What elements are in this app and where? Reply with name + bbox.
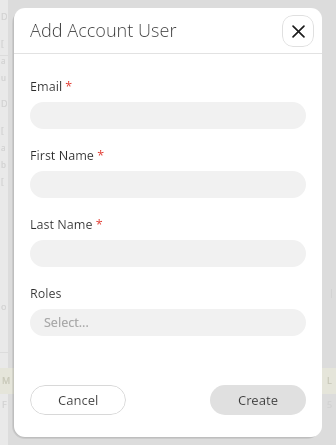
- staticText: a: [1, 142, 6, 153]
- staticText: u: [1, 72, 6, 83]
- staticText: L: [327, 374, 332, 386]
- staticText: First Name *: [30, 147, 105, 164]
- staticText: Add Account User: [30, 18, 177, 43]
- staticText: M: [2, 374, 11, 386]
- button[interactable]: Create: [210, 385, 306, 415]
- staticText: o: [1, 300, 7, 312]
- staticText: a: [1, 55, 6, 66]
- staticText: b: [1, 159, 6, 170]
- staticText: Di: [1, 97, 10, 109]
- staticText: 5: [327, 398, 333, 410]
- staticText: [: [1, 38, 4, 49]
- staticText: Select...: [44, 314, 89, 331]
- button[interactable]: Close: [282, 15, 314, 47]
- staticText: |: [329, 286, 334, 298]
- staticText: F: [2, 398, 7, 410]
- staticText: Email *: [30, 78, 73, 95]
- staticText: Roles: [30, 285, 62, 302]
- staticText: Di: [1, 10, 10, 22]
- staticText: Cancel: [58, 391, 99, 409]
- staticText: Create: [238, 391, 278, 409]
- button[interactable]: Select...: [30, 309, 306, 336]
- button[interactable]: Cancel: [30, 385, 126, 415]
- staticText: [: [1, 125, 4, 136]
- staticText: [: [1, 176, 4, 187]
- staticText: Last Name *: [30, 216, 103, 233]
